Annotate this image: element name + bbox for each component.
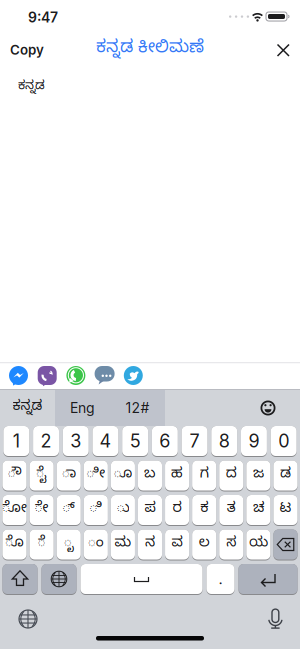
- button[interactable]: ಿ: [84, 495, 108, 526]
- staticText: ೆ: [38, 535, 46, 554]
- button[interactable]: 0: [271, 426, 297, 457]
- button[interactable]: 3: [63, 426, 89, 457]
- button[interactable]: Share to Twitter: [124, 366, 143, 386]
- button[interactable]: ನ: [138, 529, 162, 560]
- button[interactable]: ಜ: [246, 460, 270, 491]
- staticText: ಬ: [144, 466, 156, 485]
- staticText: ಕ: [200, 500, 208, 520]
- staticText: .: [218, 570, 222, 588]
- staticText: 8: [219, 430, 230, 452]
- staticText: 7: [189, 430, 199, 452]
- staticText: ಡ: [280, 466, 291, 485]
- button[interactable]: ್: [57, 495, 81, 526]
- button[interactable]: ಂ: [84, 529, 108, 560]
- button[interactable]: ದ: [219, 460, 243, 491]
- button[interactable]: Copy: [0, 32, 54, 68]
- button[interactable]: ಬ: [138, 460, 162, 491]
- staticText: 3: [70, 430, 81, 452]
- staticText: ೂ: [113, 466, 132, 485]
- button[interactable]: 8: [211, 426, 237, 457]
- staticText: Copy: [10, 42, 44, 58]
- button[interactable]: Close: [266, 32, 300, 68]
- staticText: 6: [159, 430, 170, 452]
- button[interactable]: ೌ: [2, 460, 27, 491]
- staticText: ಮ: [114, 535, 131, 554]
- button[interactable]: .: [206, 564, 234, 595]
- staticText: 4: [99, 430, 111, 452]
- button[interactable]: ಚ: [246, 495, 270, 526]
- staticText: ಪ: [144, 500, 155, 520]
- button[interactable]: ೈ: [30, 460, 54, 491]
- button[interactable]: ಯ: [246, 529, 270, 560]
- button[interactable]: Eng: [55, 390, 110, 426]
- button[interactable]: 2: [33, 426, 59, 457]
- staticText: ೈ: [36, 466, 47, 485]
- staticText: ಲ: [199, 535, 210, 554]
- button[interactable]: Space: [80, 564, 202, 595]
- staticText: ು: [116, 500, 129, 520]
- button[interactable]: ೃ: [57, 529, 81, 560]
- staticText: ಟ: [279, 500, 291, 520]
- staticText: ಜ: [253, 466, 264, 485]
- button[interactable]: Shift: [2, 564, 37, 595]
- button[interactable]: Delete: [273, 529, 298, 560]
- button[interactable]: Next keyboard: [41, 564, 76, 595]
- button[interactable]: ಕನ್ನಡ: [0, 390, 55, 426]
- staticText: 12#: [125, 399, 149, 416]
- button[interactable]: 5: [122, 426, 148, 457]
- staticText: ಹ: [171, 466, 183, 485]
- button[interactable]: ಟ: [273, 495, 298, 526]
- button[interactable]: ಸ: [219, 529, 243, 560]
- staticText: 9:47: [28, 9, 58, 26]
- button[interactable]: 1: [3, 426, 29, 457]
- button[interactable]: ಕ: [192, 495, 216, 526]
- staticText: ೋ: [2, 500, 27, 520]
- button[interactable]: 7: [182, 426, 207, 457]
- staticText: ೇ: [35, 500, 49, 520]
- button[interactable]: ೀ: [84, 460, 108, 491]
- button[interactable]: Dictate: [0, 595, 300, 649]
- button[interactable]: Share to Viber: [38, 366, 57, 386]
- button[interactable]: ಮ: [111, 529, 135, 560]
- button[interactable]: ಾ: [57, 460, 81, 491]
- staticText: ಕನ್ನಡ ಕೀಲಿಮಣೆ: [96, 38, 204, 62]
- staticText: ಾ: [62, 466, 76, 485]
- button[interactable]: ೋ: [2, 495, 27, 526]
- button[interactable]: 9: [241, 426, 267, 457]
- button[interactable]: ಹ: [165, 460, 189, 491]
- button[interactable]: ರ: [165, 495, 189, 526]
- staticText: ಸ: [226, 535, 236, 554]
- button[interactable]: Share to Messages: [95, 366, 114, 386]
- staticText: 5: [130, 430, 141, 452]
- staticText: Eng: [70, 399, 95, 416]
- button[interactable]: Return: [238, 564, 297, 595]
- button[interactable]: ು: [111, 495, 135, 526]
- staticText: ರ: [173, 500, 182, 520]
- staticText: ೌ: [7, 466, 21, 485]
- staticText: 0: [278, 430, 289, 452]
- staticText: 1: [13, 430, 20, 452]
- button[interactable]: ತ: [219, 495, 243, 526]
- button[interactable]: ವ: [165, 529, 189, 560]
- button[interactable]: Share to Messenger: [9, 366, 28, 386]
- staticText: ದ: [226, 466, 237, 485]
- button[interactable]: 6: [152, 426, 178, 457]
- button[interactable]: ಪ: [138, 495, 162, 526]
- button[interactable]: ಡ: [273, 460, 298, 491]
- button[interactable]: 4: [92, 426, 118, 457]
- staticText: ೃ: [64, 535, 74, 554]
- button[interactable]: ಗ: [192, 460, 216, 491]
- staticText: ಚ: [253, 500, 264, 520]
- button[interactable]: ೆ: [30, 529, 54, 560]
- button[interactable]: Next keyboard: [0, 595, 56, 639]
- button[interactable]: Share to WhatsApp: [66, 366, 85, 386]
- button[interactable]: ೊ: [2, 529, 27, 560]
- button[interactable]: ಲ: [192, 529, 216, 560]
- button[interactable]: Emoji: [250, 390, 286, 426]
- staticText: 2: [41, 430, 52, 452]
- button[interactable]: 12#: [110, 390, 165, 426]
- button[interactable]: ೂ: [111, 460, 135, 491]
- button[interactable]: ೇ: [30, 495, 54, 526]
- staticText: ಯ: [249, 535, 268, 554]
- staticText: ೊ: [5, 535, 24, 554]
